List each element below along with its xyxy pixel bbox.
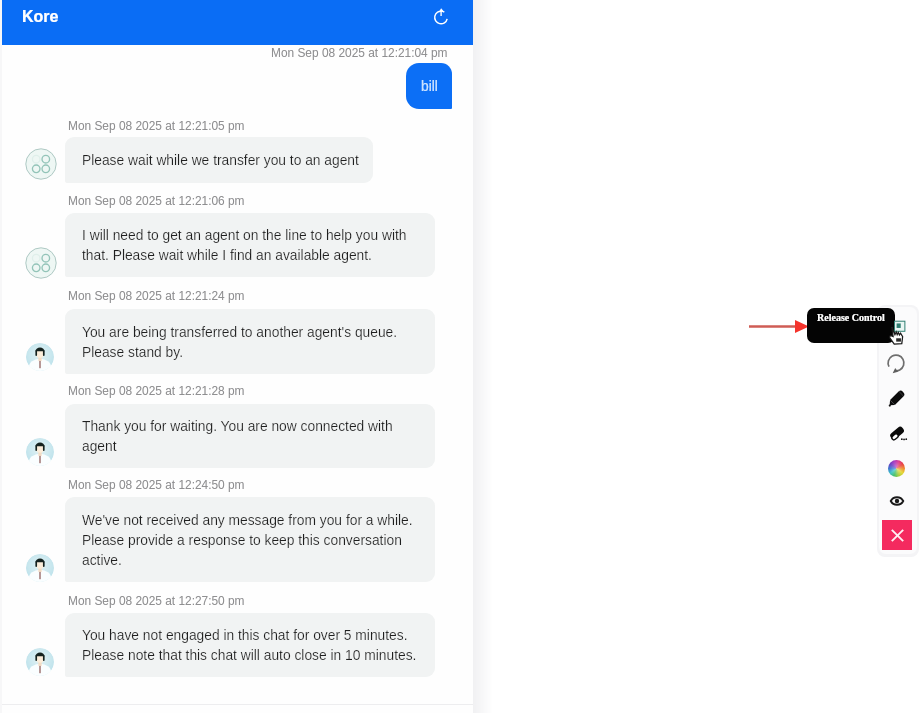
- button[interactable]: Colour picker: [882, 454, 910, 482]
- staticText: bill: [421, 79, 438, 94]
- staticText: active.: [82, 553, 122, 568]
- staticText: Release Control: [817, 312, 885, 323]
- staticText: agent: [82, 439, 117, 454]
- staticText: Mon Sep 08 2025 at 12:21:05 pm: [68, 119, 245, 132]
- staticText: Please stand by.: [82, 345, 183, 360]
- staticText: Please provide a response to keep this c…: [82, 533, 402, 548]
- button[interactable]: Please wait while we transfer you to an …: [65, 137, 373, 183]
- button[interactable]: We've not received any message from you …: [65, 497, 435, 582]
- button[interactable]: bill: [406, 63, 452, 109]
- staticText: Mon Sep 08 2025 at 12:21:24 pm: [68, 289, 245, 302]
- button[interactable]: Erase: [883, 419, 911, 447]
- button[interactable]: Draw: [883, 384, 911, 412]
- button[interactable]: Preview: [883, 487, 911, 515]
- staticText: Mon Sep 08 2025 at 12:21:04 pm: [271, 46, 448, 59]
- staticText: Mon Sep 08 2025 at 12:27:50 pm: [68, 594, 245, 607]
- button[interactable]: You have not engaged in this chat for ov…: [65, 613, 435, 677]
- button[interactable]: I will need to get an agent on the line …: [65, 213, 435, 277]
- button[interactable]: Release control: [885, 317, 913, 345]
- staticText: Mon Sep 08 2025 at 12:24:50 pm: [68, 478, 245, 491]
- staticText: Thank you for waiting. You are now conne…: [82, 419, 393, 434]
- staticText: You are being transferred to another age…: [82, 325, 398, 340]
- staticText: Please note that this chat will auto clo…: [82, 648, 417, 663]
- staticText: that. Please wait while I find an availa…: [82, 248, 372, 263]
- staticText: I will need to get an agent on the line …: [82, 228, 407, 243]
- staticText: Mon Sep 08 2025 at 12:21:28 pm: [68, 384, 245, 397]
- staticText: Please wait while we transfer you to an …: [82, 153, 359, 168]
- staticText: Mon Sep 08 2025 at 12:21:06 pm: [68, 194, 245, 207]
- button[interactable]: Thank you for waiting. You are now conne…: [65, 404, 435, 468]
- button[interactable]: You are being transferred to another age…: [65, 309, 435, 374]
- button[interactable]: Undo: [882, 349, 910, 377]
- button[interactable]: Close: [882, 520, 912, 550]
- staticText: You have not engaged in this chat for ov…: [82, 628, 408, 643]
- button[interactable]: Kore: [2, 0, 473, 45]
- staticText: Kore: [22, 8, 59, 26]
- button[interactable]: Refresh conversation: [428, 4, 454, 30]
- staticText: We've not received any message from you …: [82, 513, 413, 528]
